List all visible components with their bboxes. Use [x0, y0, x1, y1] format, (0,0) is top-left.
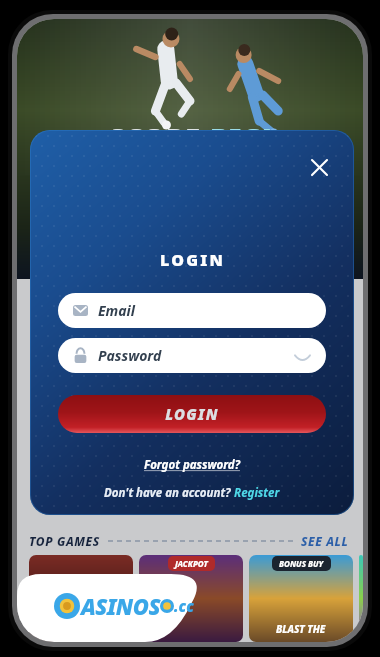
staticText: Register: [234, 485, 280, 501]
button[interactable]: LOGIN: [58, 395, 326, 433]
button[interactable]: [359, 555, 363, 642]
staticText: Forgot password?: [144, 457, 240, 473]
button[interactable]: Forgot password?: [138, 455, 246, 475]
staticText: BONUS BUY: [279, 558, 324, 569]
staticText: Password: [98, 346, 162, 365]
button[interactable]: Show password: [293, 347, 311, 365]
staticText: SEE ALL: [301, 533, 349, 549]
button[interactable]: Password: [58, 338, 326, 373]
staticText: BLAST THE: [276, 622, 326, 636]
staticText: Don't have an account?: [104, 485, 234, 501]
staticText: LOGIN: [165, 404, 219, 424]
staticText: ASINOS: [81, 591, 160, 621]
staticText: BIG!: [210, 119, 272, 156]
button[interactable]: Register: [234, 485, 280, 501]
staticText: LOGIN: [160, 249, 225, 271]
button[interactable]: JACKPOT: [139, 555, 243, 642]
button[interactable]: [29, 555, 133, 642]
staticText: SCORE: [109, 119, 210, 156]
staticText: TOP GAMES: [29, 533, 100, 549]
button[interactable]: SEE ALL: [299, 529, 351, 553]
button[interactable]: BLAST THE: [249, 555, 353, 642]
button[interactable]: Email: [58, 293, 326, 328]
button[interactable]: Close: [304, 152, 334, 182]
staticText: JACKPOT: [175, 558, 208, 569]
staticText: .cc: [174, 596, 194, 616]
staticText: Email: [98, 301, 135, 320]
